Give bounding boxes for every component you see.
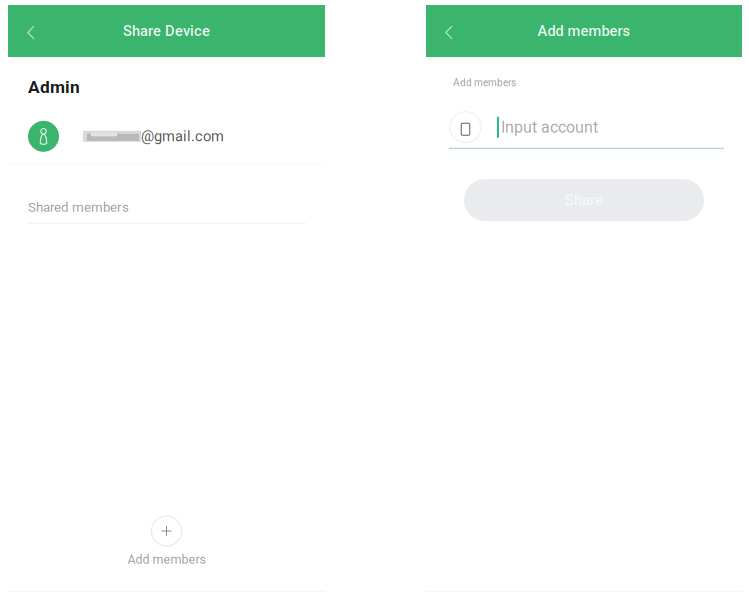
staticText: Input account bbox=[501, 118, 598, 137]
staticText: Shared members bbox=[28, 199, 129, 215]
staticText: Add members bbox=[537, 22, 630, 40]
button[interactable]: Back bbox=[426, 5, 472, 57]
button[interactable]: Add members bbox=[8, 516, 325, 567]
staticText: Add members bbox=[127, 552, 205, 567]
staticText: Add members bbox=[453, 77, 516, 89]
staticText: @gmail.com bbox=[141, 128, 224, 145]
staticText: Share Device bbox=[123, 22, 210, 40]
button[interactable]: Share bbox=[464, 179, 704, 221]
button[interactable]: Back bbox=[8, 5, 54, 57]
staticText: Share bbox=[565, 191, 603, 209]
staticText: Admin bbox=[28, 77, 80, 97]
